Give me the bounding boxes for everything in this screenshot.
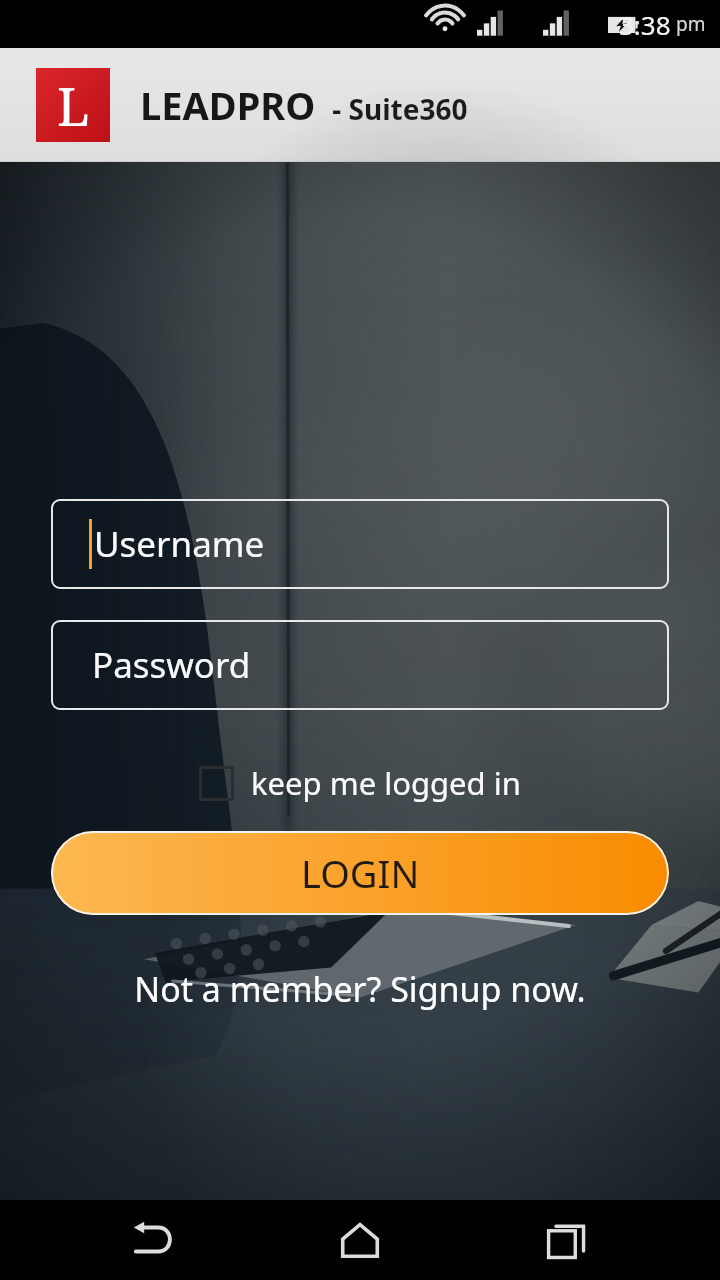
staticText: Username: [94, 520, 265, 568]
staticText: Not a member? Signup now.: [0, 966, 720, 1012]
staticText: LEADPRO: [140, 79, 316, 131]
staticText: 3:38: [619, 7, 671, 42]
staticText: LOGIN: [301, 847, 420, 899]
staticText: - Suite360: [325, 90, 468, 128]
button[interactable]: Recent apps: [513, 1200, 621, 1280]
button[interactable]: Not a member? Signup now.: [0, 966, 720, 1012]
button[interactable]: Back: [99, 1200, 207, 1280]
button[interactable]: Password: [51, 620, 669, 710]
button[interactable]: LeadPro logo: [36, 68, 110, 142]
staticText: pm: [676, 11, 706, 37]
staticText: L: [57, 70, 90, 141]
button[interactable]: Home: [306, 1200, 414, 1280]
staticText: keep me logged in: [251, 762, 521, 804]
button[interactable]: keep me logged in: [193, 756, 527, 810]
button[interactable]: LOGIN: [51, 831, 669, 915]
staticText: Password: [92, 641, 251, 689]
button[interactable]: Username: [51, 499, 669, 589]
